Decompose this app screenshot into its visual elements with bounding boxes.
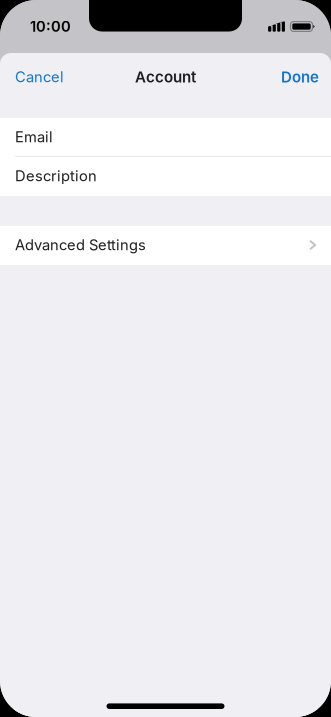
staticText: Cancel	[15, 68, 64, 86]
button[interactable]: Description	[0, 157, 331, 196]
button[interactable]: Email	[0, 118, 331, 157]
staticText: Done	[281, 68, 319, 86]
button[interactable]: Advanced Settings	[0, 226, 331, 265]
staticText: Account	[135, 68, 196, 86]
button[interactable]: Done	[271, 58, 319, 96]
staticText: Advanced Settings	[15, 236, 146, 254]
button[interactable]: Cancel	[15, 58, 74, 96]
staticText: Email	[15, 128, 53, 146]
staticText: Description	[15, 167, 97, 185]
staticText: 10:00	[30, 18, 71, 35]
